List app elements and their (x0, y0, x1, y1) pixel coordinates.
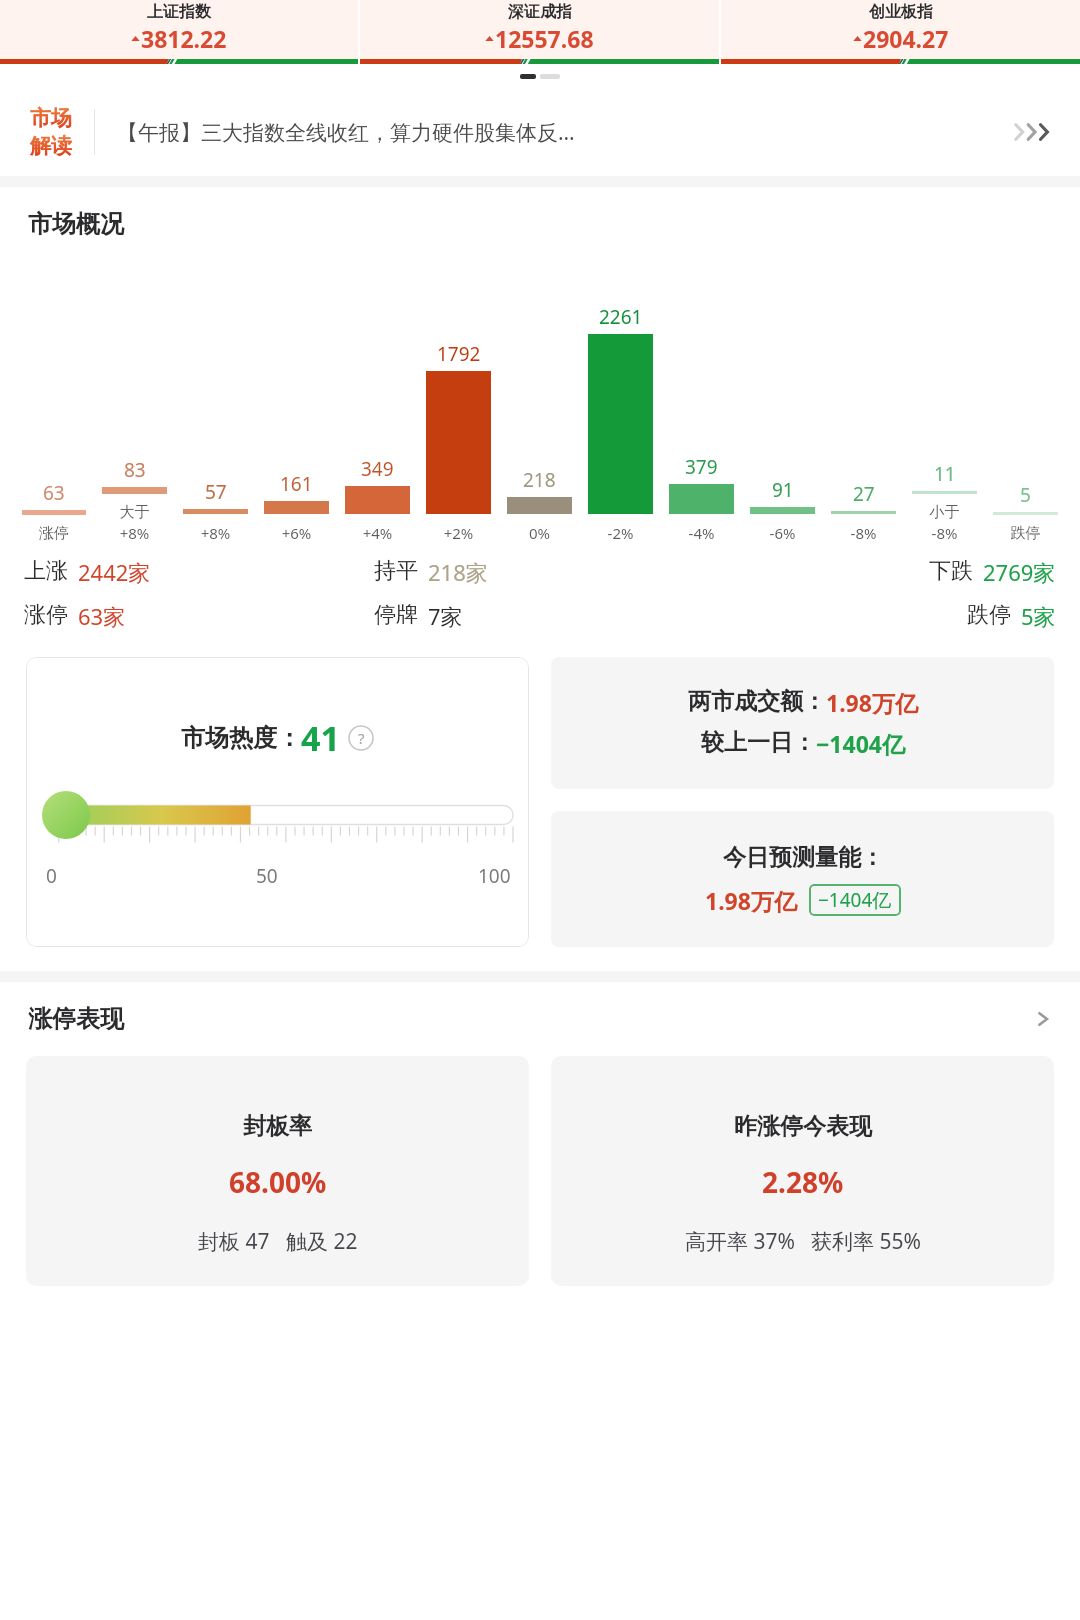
staticText: 两市成交额： (688, 687, 826, 716)
staticText: 大于 +8% (94, 503, 175, 543)
staticText: 12557.68 (495, 23, 594, 54)
staticText: 0 (46, 863, 57, 889)
staticText: 持平 (374, 557, 418, 585)
staticText: +36.3 (855, 55, 891, 64)
staticText: 5家 (1021, 601, 1056, 631)
staticText: 0% (499, 523, 580, 543)
staticText: +4% (337, 523, 418, 543)
staticText: 3812.22 (141, 23, 227, 54)
staticText: 2261 (599, 304, 643, 330)
staticText: 11 (934, 461, 956, 487)
staticText: −1404亿 (816, 728, 905, 759)
staticText: 83 (124, 457, 146, 483)
staticText: +0.38% (541, 55, 589, 64)
button[interactable]: 两市成交额： (551, 657, 1054, 789)
staticText: +8% (175, 523, 256, 543)
staticText: 【午报】三大指数全线收红，算力硬件股集体反… (117, 118, 1014, 147)
staticText: −1404亿 (818, 887, 892, 913)
staticText: 停牌 (374, 601, 418, 629)
staticText: 68.00% (229, 1163, 327, 1201)
button[interactable]: 深证成指 (360, 0, 719, 64)
staticText: 218家 (428, 557, 488, 587)
staticText: 41 (301, 715, 340, 761)
staticText: 较上一日： (701, 728, 816, 757)
staticText: 2442家 (78, 557, 151, 587)
staticText: +1.27% (898, 55, 946, 64)
staticText: 5 (1020, 482, 1031, 508)
staticText: 高开率 37% (685, 1227, 795, 1256)
staticText: +0.13% (177, 55, 225, 64)
staticText: 上涨 (24, 557, 68, 585)
staticText: 涨停 (14, 524, 94, 543)
staticText: 解读 (30, 133, 72, 159)
staticText: 379 (685, 454, 718, 480)
staticText: 小于 -8% (904, 503, 985, 543)
staticText: ? (358, 728, 365, 748)
staticText: 封板率 (243, 1112, 312, 1141)
button[interactable]: 说明 (348, 725, 374, 751)
staticText: 市场 (30, 105, 72, 131)
staticText: 1792 (437, 341, 481, 367)
staticText: -4% (661, 523, 742, 543)
staticText: 57 (205, 479, 227, 505)
button[interactable]: 今日预测量能： (551, 811, 1054, 947)
staticText: 63 (43, 480, 65, 506)
button[interactable]: 封板率 (26, 1056, 529, 1286)
staticText: 1.98万亿 (705, 885, 797, 916)
staticText: 深证成指 (508, 2, 572, 22)
staticText: 涨停 (24, 601, 68, 629)
staticText: 下跌 (929, 557, 973, 585)
staticText: 218 (523, 467, 556, 493)
staticText: +6% (256, 523, 337, 543)
staticText: 创业板指 (869, 2, 933, 22)
staticText: 63家 (78, 601, 126, 631)
staticText: 100 (478, 863, 511, 889)
staticText: 跌停 (985, 524, 1066, 543)
button[interactable]: 创业板指 (721, 0, 1080, 64)
staticText: 50 (256, 863, 278, 889)
button[interactable]: 涨停表现 (28, 1004, 1052, 1034)
staticText: 1.98万亿 (826, 687, 918, 718)
staticText: -2% (580, 523, 661, 543)
staticText: +2% (418, 523, 499, 543)
staticText: 封板 47 (198, 1227, 270, 1256)
staticText: 27 (853, 481, 875, 507)
staticText: 获利率 55% (811, 1227, 921, 1256)
button[interactable]: 上证指数 (0, 0, 358, 64)
staticText: 7家 (428, 601, 463, 631)
staticText: 市场概况 (28, 209, 124, 239)
staticText: 161 (280, 471, 313, 497)
staticText: 上证指数 (147, 2, 211, 22)
other: 更多 (1034, 1010, 1052, 1028)
button[interactable]: 市场热度： (26, 657, 529, 947)
staticText: 市场热度： (181, 723, 301, 753)
button[interactable]: 市场 (0, 88, 1080, 176)
staticText: 91 (772, 477, 794, 503)
staticText: 昨涨停今表现 (734, 1112, 872, 1141)
staticText: 349 (361, 456, 394, 482)
staticText: 2.28% (762, 1163, 844, 1201)
staticText: 2904.27 (863, 23, 949, 54)
staticText: 跌停 (967, 601, 1011, 629)
staticText: -6% (742, 523, 823, 543)
staticText: 触及 22 (286, 1227, 358, 1256)
staticText: 2769家 (983, 557, 1056, 587)
staticText: 今日预测量能： (723, 843, 884, 872)
staticText: 涨停表现 (28, 1004, 124, 1034)
staticText: +4.93 (134, 55, 170, 64)
staticText: -8% (823, 523, 904, 543)
staticText: +47.08 (490, 55, 534, 64)
button[interactable]: 昨涨停今表现 (551, 1056, 1054, 1286)
